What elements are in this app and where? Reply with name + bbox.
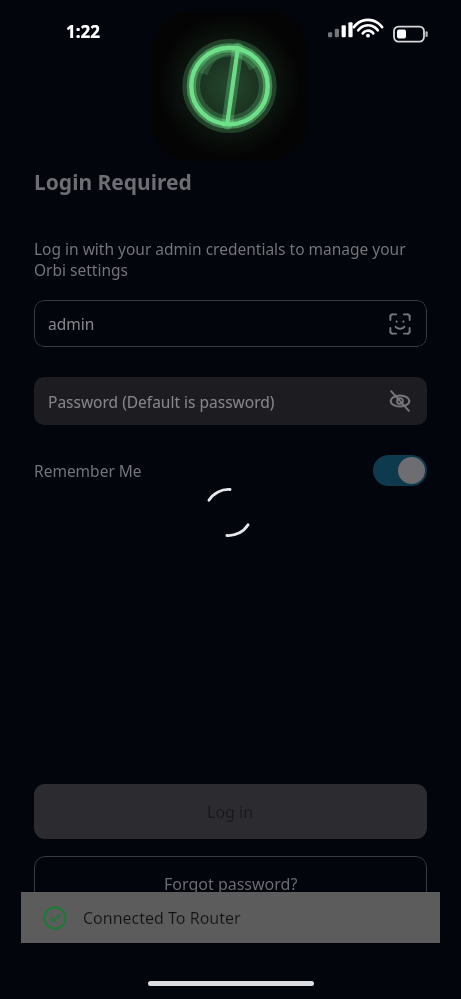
staticText: Log in with your admin credentials to ma… [34,238,430,281]
staticText: 1:22 [66,20,100,43]
button[interactable]: Forgot password? [34,856,427,911]
staticText: Forgot password? [164,873,298,895]
button[interactable]: Remember Me toggle [373,455,427,486]
staticText: Connected To Router [83,907,241,929]
staticText: Login Required [34,168,192,197]
staticText: admin [48,313,387,334]
staticText: Password (Default is password) [48,391,387,412]
staticText: Remember Me [34,460,373,481]
button[interactable]: Face ID [387,311,413,337]
button[interactable]: Connected To Router [21,892,440,943]
button[interactable]: Remember Me [34,452,427,488]
staticText: Log in [207,801,254,823]
button[interactable]: Password (Default is password) [34,377,427,425]
button[interactable]: Show password [387,388,413,414]
button[interactable]: admin [34,300,427,347]
